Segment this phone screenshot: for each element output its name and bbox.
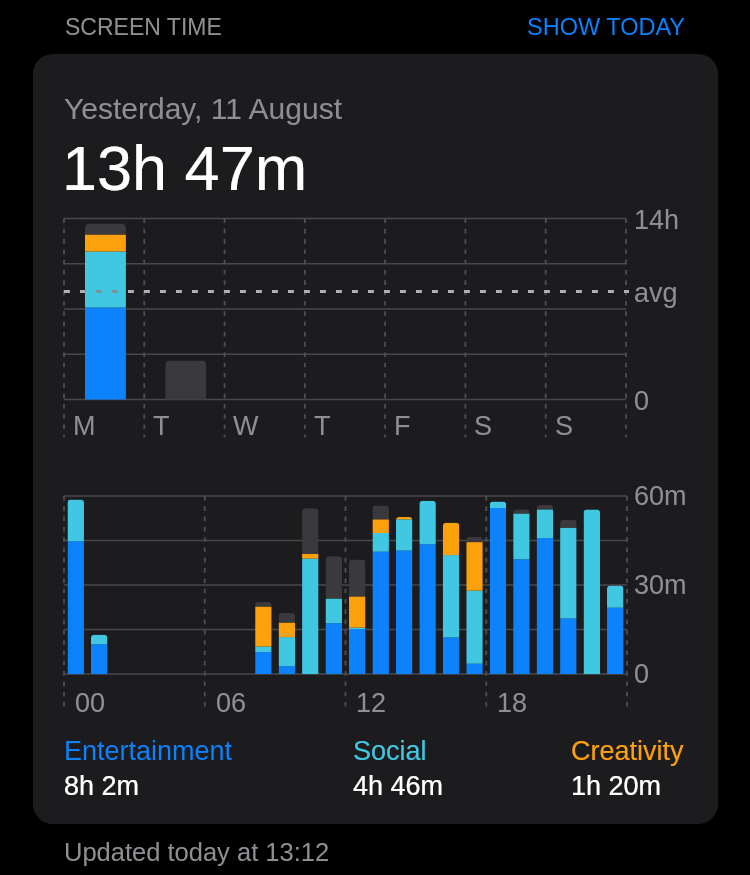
staticText: 4h 46m xyxy=(353,771,444,801)
staticText: T xyxy=(153,411,170,441)
staticText: SCREEN TIME xyxy=(65,14,222,40)
staticText: 18 xyxy=(497,688,528,718)
staticText: M xyxy=(73,411,96,441)
staticText: 30m xyxy=(634,570,687,600)
button[interactable]: SHOW TODAY xyxy=(527,14,685,40)
staticText: 06 xyxy=(216,688,247,718)
staticText: avg xyxy=(634,278,678,308)
staticText: 00 xyxy=(75,688,106,718)
staticText: Updated today at 13:12 xyxy=(64,838,330,866)
button[interactable]: Screen time details xyxy=(33,54,718,824)
staticText: W xyxy=(233,411,259,441)
staticText: F xyxy=(394,411,411,441)
button[interactable]: Creativity 1h 20m xyxy=(571,736,721,796)
staticText: Entertainment xyxy=(64,736,233,766)
staticText: 12 xyxy=(356,688,387,718)
staticText: 0 xyxy=(634,386,650,416)
button[interactable]: SCREEN TIME xyxy=(65,14,222,40)
staticText: T xyxy=(314,411,331,441)
staticText: 13h 47m xyxy=(62,133,308,203)
staticText: 14h xyxy=(634,205,680,235)
button[interactable]: Entertainment 8h 2m xyxy=(64,736,353,796)
staticText: S xyxy=(474,411,493,441)
staticText: S xyxy=(555,411,574,441)
staticText: 0 xyxy=(634,659,650,689)
staticText: 1h 20m xyxy=(571,771,662,801)
staticText: Creativity xyxy=(571,736,684,766)
button[interactable]: Social 4h 46m xyxy=(353,736,571,796)
staticText: 8h 2m xyxy=(64,771,140,801)
staticText: SHOW TODAY xyxy=(527,14,685,40)
staticText: 60m xyxy=(634,481,687,511)
staticText: Social xyxy=(353,736,427,766)
staticText: Yesterday, 11 August xyxy=(64,92,342,126)
